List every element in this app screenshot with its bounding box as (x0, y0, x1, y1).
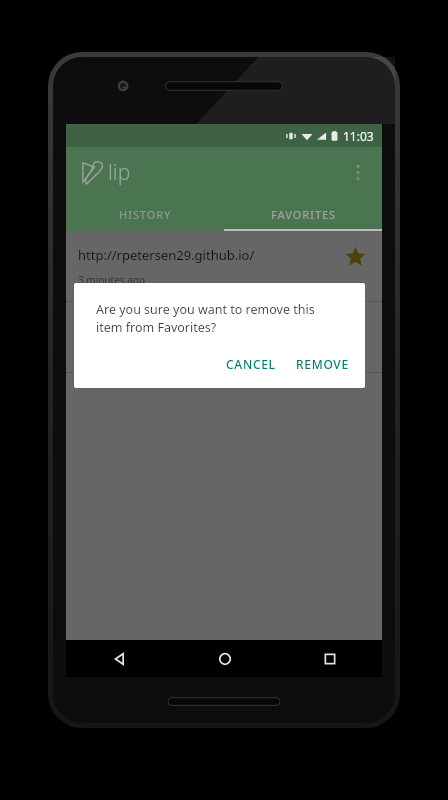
staticText: http://rpetersen29.github.io/ (78, 246, 255, 264)
button[interactable]: FAVORITES (224, 197, 382, 231)
button[interactable]: REMOVE (288, 348, 357, 380)
button[interactable]: Favorite (338, 310, 372, 344)
button[interactable]: Favorite (338, 239, 372, 273)
staticText: lip (108, 158, 131, 187)
button[interactable]: CANCEL (218, 348, 284, 380)
button[interactable]: Recent apps (277, 640, 382, 677)
button[interactable]: Back (66, 640, 172, 677)
button[interactable]: http://rpetersen29.github.io/ (66, 231, 382, 301)
staticText: 11:03 (343, 128, 374, 144)
staticText: CANCEL (226, 356, 276, 372)
button[interactable]: HISTORY (66, 197, 224, 231)
staticText: REMOVE (296, 356, 349, 372)
staticText: FAVORITES (271, 207, 336, 222)
staticText: 3 minutes ago (78, 273, 146, 287)
button[interactable]: Home (172, 640, 277, 677)
staticText: Are you sure you want to remove this ite… (96, 301, 343, 336)
staticText: 636-555-3226 (78, 317, 161, 335)
button[interactable]: 636-555-3226 (66, 302, 382, 372)
staticText: HISTORY (119, 207, 172, 222)
button[interactable]: More options (338, 152, 378, 192)
